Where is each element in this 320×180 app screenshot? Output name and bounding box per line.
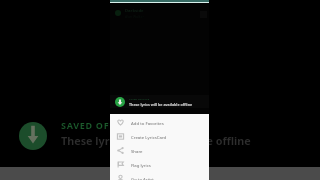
button[interactable]: Add to Favorites [110,115,209,129]
staticText: Flag lyrics [131,162,151,168]
staticText: SAVED OFFLINE [129,97,150,100]
button[interactable]: Darkside [115,6,209,20]
staticText: These lyrics will be available offline [129,102,193,107]
button[interactable]: Go to Artist [110,171,209,180]
button[interactable]: Share [110,143,209,157]
staticText: Go to Artist [131,176,154,180]
staticText: Darkside [125,8,144,14]
staticText: Create LyricsCard [131,134,167,140]
staticText: SAVED OFFLINE [61,119,139,131]
staticText: Add to Favorites [131,120,164,126]
other: Downloaded [19,122,47,150]
staticText: Share [131,148,143,154]
staticText: These lyrics will be available offline [61,133,251,148]
button[interactable]: Flag lyrics [110,157,209,171]
button[interactable]: Create LyricsCard [110,129,209,143]
